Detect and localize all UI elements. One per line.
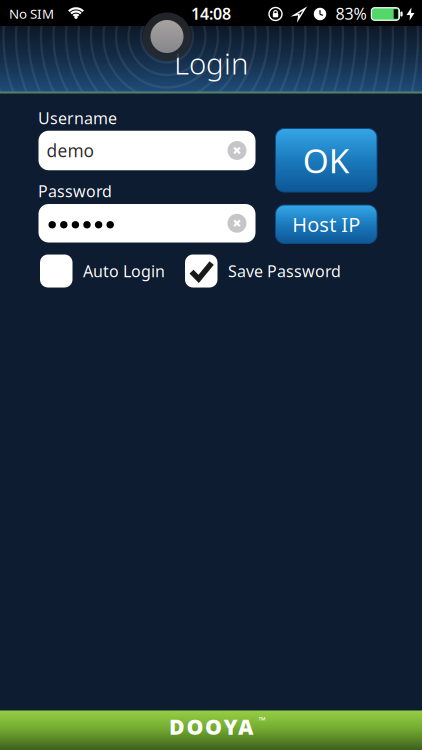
- staticText: demo: [46, 139, 93, 162]
- button[interactable]: Auto Login: [40, 254, 165, 287]
- staticText: 83%: [335, 3, 366, 24]
- button[interactable]: Username text field: [38, 131, 255, 170]
- button[interactable]: OK: [275, 128, 377, 192]
- staticText: Save Password: [228, 260, 341, 282]
- staticText: OK: [303, 138, 350, 182]
- button[interactable]: Save Password: [185, 254, 341, 287]
- button[interactable]: Clear text: [227, 214, 246, 233]
- button[interactable]: Password text field: [38, 204, 255, 242]
- staticText: 14:08: [191, 3, 231, 24]
- staticText: Auto Login: [83, 260, 165, 282]
- staticText: No SIM: [9, 5, 54, 22]
- button[interactable]: Host IP: [275, 205, 377, 243]
- staticText: Username: [38, 107, 117, 129]
- staticText: Password: [38, 180, 112, 202]
- staticText: DOOYA: [169, 712, 253, 741]
- staticText: ™: [258, 714, 265, 727]
- staticText: Login: [174, 43, 248, 82]
- button[interactable]: Clear text: [227, 141, 246, 160]
- staticText: Host IP: [292, 211, 360, 238]
